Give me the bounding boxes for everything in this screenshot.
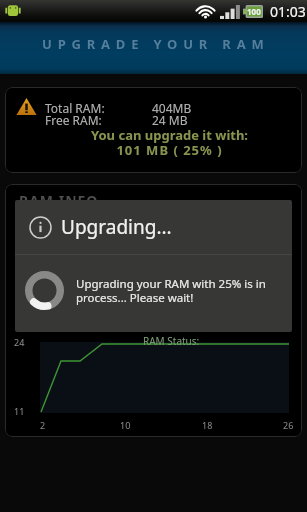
staticText: 10 bbox=[120, 419, 131, 431]
staticText: 18 bbox=[202, 419, 213, 431]
button[interactable]: Total RAM: bbox=[5, 87, 302, 173]
staticText: Total RAM: bbox=[45, 100, 105, 116]
staticText: 24 bbox=[14, 336, 25, 348]
staticText: RAM Status: bbox=[143, 334, 200, 348]
staticText: RAM INFO bbox=[19, 191, 99, 210]
staticText: You can upgrade it with: bbox=[21, 126, 302, 144]
staticText: 404MB bbox=[152, 100, 192, 116]
button[interactable]: RAM INFO bbox=[5, 184, 302, 437]
other: Progress bbox=[25, 271, 64, 310]
staticText: UPGRADE YOUR RAM bbox=[42, 35, 270, 53]
staticText: 101 MB ( 25% ) bbox=[21, 141, 302, 159]
staticText: 11 bbox=[14, 405, 25, 417]
staticText: Free RAM: bbox=[45, 112, 102, 128]
other: Info bbox=[29, 216, 52, 239]
staticText: 24 MB bbox=[152, 112, 188, 128]
staticText: 26 bbox=[283, 419, 294, 431]
staticText: 2 bbox=[40, 419, 46, 431]
staticText: Upgrading your RAM with 25% is in proces… bbox=[76, 276, 278, 305]
staticText: Upgrading... bbox=[61, 214, 172, 240]
staticText: 100 bbox=[247, 6, 261, 17]
staticText: 01:03 bbox=[270, 2, 306, 21]
